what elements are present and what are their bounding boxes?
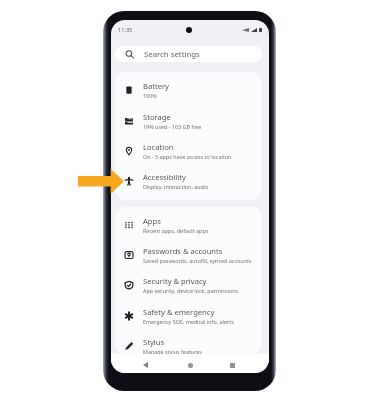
staticText: Display, interaction, audio (143, 183, 209, 190)
button[interactable]: Home (182, 357, 198, 373)
staticText: Recent apps, default apps (143, 227, 209, 234)
staticText: 100% (143, 92, 157, 99)
staticText: Storage (143, 112, 171, 122)
staticText: Manage stylus features (143, 348, 202, 354)
staticText: Safety & emergency (143, 307, 215, 317)
button[interactable]: Battery (115, 75, 262, 105)
button[interactable]: Recent apps (224, 357, 240, 373)
staticText: Location (143, 142, 174, 152)
staticText: Search settings (144, 49, 200, 60)
staticText: Apps (143, 216, 161, 226)
button[interactable]: Back (137, 357, 153, 373)
button[interactable]: Apps (115, 210, 262, 240)
staticText: Emergency SOS, medical info, alerts (143, 318, 234, 325)
staticText: 19% used - 103 GB free (143, 123, 202, 130)
staticText: Security & privacy (143, 276, 207, 286)
button[interactable]: Security & privacy (115, 270, 262, 300)
button[interactable]: Storage (115, 106, 262, 136)
staticText: Saved passwords, autofill, synced accoun… (143, 257, 252, 264)
staticText: Stylus (143, 337, 165, 347)
button[interactable]: Stylus (115, 331, 262, 354)
staticText: Battery (143, 81, 169, 91)
other: Pointer arrow (78, 169, 124, 194)
staticText: Passwords & accounts (143, 246, 223, 256)
button[interactable]: Safety & emergency (115, 301, 262, 331)
staticText: 11:35 (118, 26, 133, 34)
button[interactable]: Accessibility (115, 166, 262, 196)
staticText: App security, device lock, permissions (143, 287, 239, 294)
button[interactable]: Location (115, 136, 262, 166)
staticText: Accessibility (143, 172, 186, 182)
staticText: On - 5 apps have access to location (143, 153, 232, 160)
button[interactable]: Search settings (115, 46, 262, 62)
button[interactable]: Passwords & accounts (115, 240, 262, 270)
